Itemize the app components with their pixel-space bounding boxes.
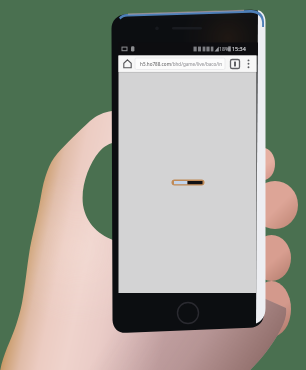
staticText: /bhd/game/live/baco/in (171, 61, 223, 67)
button[interactable]: Hand holding phone showing mobile browse… (0, 0, 306, 370)
staticText: 18% (219, 45, 230, 52)
staticText: h5.ho788.com (140, 61, 171, 67)
staticText: 15:34 (232, 45, 246, 52)
